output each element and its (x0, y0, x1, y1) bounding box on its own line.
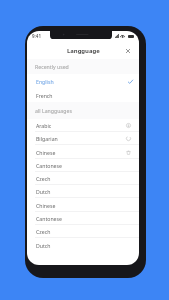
staticText: 9:41 (32, 33, 41, 39)
button[interactable]: Download (124, 121, 133, 130)
staticText: Arabic (36, 122, 52, 129)
button[interactable]: Arabic (27, 119, 139, 132)
staticText: all Langguages (35, 107, 72, 114)
button[interactable]: English (27, 74, 139, 88)
button[interactable]: Delete (124, 148, 133, 157)
staticText: Recently used (35, 63, 69, 70)
staticText: Czech (36, 175, 51, 182)
button[interactable]: French (27, 88, 139, 102)
staticText: Bilgarian (36, 135, 58, 142)
staticText: Czech (36, 228, 51, 235)
staticText: Dutch (36, 188, 51, 195)
staticText: English (36, 78, 54, 85)
button[interactable]: Dutch (27, 185, 139, 198)
button[interactable]: Chinese (27, 199, 139, 212)
staticText: Cantonese (36, 215, 62, 222)
button[interactable]: Czech (27, 225, 139, 238)
staticText: Dutch (36, 242, 51, 249)
staticText: Langguage (67, 47, 100, 55)
button[interactable]: Close (123, 46, 132, 55)
button[interactable]: Cantonese (27, 212, 139, 225)
button[interactable]: Cantonese (27, 159, 139, 172)
button[interactable]: Czech (27, 172, 139, 185)
staticText: French (36, 92, 53, 99)
button[interactable]: Chinese (27, 146, 139, 159)
staticText: Cantonese (36, 162, 62, 169)
button[interactable]: Downloading (124, 134, 133, 143)
button[interactable]: Dutch (27, 239, 139, 252)
staticText: Chinese (36, 202, 56, 209)
staticText: Chinese (36, 149, 56, 156)
button[interactable]: Bilgarian (27, 132, 139, 145)
